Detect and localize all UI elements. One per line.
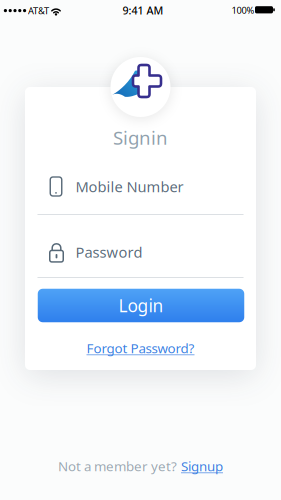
staticText: 9:41 AM	[122, 3, 163, 17]
staticText: Not a member yet?	[58, 457, 177, 475]
button[interactable]: Mobile Number	[49, 171, 243, 201]
staticText: Login	[118, 294, 163, 317]
staticText: AT&T	[28, 4, 49, 17]
button[interactable]: Password	[49, 237, 243, 267]
staticText: 100%	[231, 4, 254, 16]
staticText: Mobile Number	[75, 177, 183, 196]
staticText: Password	[75, 242, 142, 262]
staticText: Signin	[113, 125, 168, 150]
button[interactable]: Forgot Password?	[75, 338, 205, 358]
button[interactable]: Signup	[181, 457, 223, 475]
staticText: Signup	[181, 457, 223, 475]
button[interactable]: Login	[38, 289, 244, 322]
staticText: Forgot Password?	[86, 339, 194, 357]
